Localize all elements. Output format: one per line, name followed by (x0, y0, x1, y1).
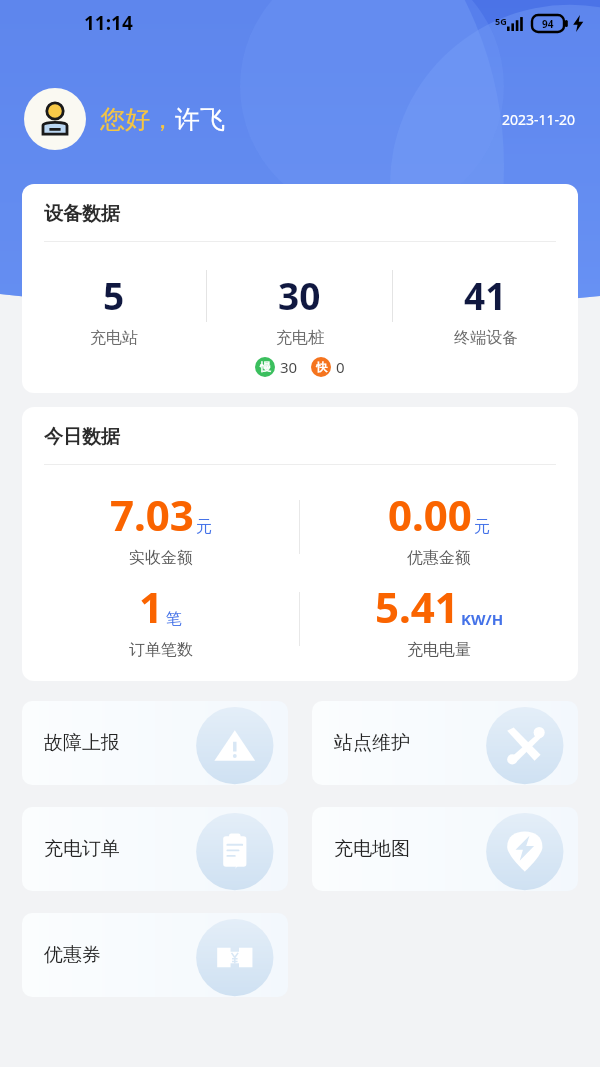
staticText: 充电订单 (44, 837, 120, 861)
staticText: 元 (196, 517, 212, 537)
staticText: 快 (316, 360, 327, 374)
staticText: 2023-11-20 (502, 110, 576, 129)
staticText: 订单笔数 (129, 640, 193, 660)
staticText: 11:14 (84, 10, 133, 36)
staticText: 94 (542, 17, 554, 31)
staticText: 41 (464, 270, 507, 320)
staticText: 慢 (260, 360, 271, 374)
staticText: 终端设备 (454, 328, 518, 348)
staticText: 站点维护 (334, 731, 410, 755)
staticText: 元 (474, 517, 490, 537)
staticText: 0 (336, 357, 345, 377)
staticText: KW/H (461, 609, 504, 629)
staticText: 0.00 (388, 486, 472, 543)
button[interactable]: 用户头像 (24, 88, 86, 150)
staticText: 笔 (166, 609, 182, 629)
staticText: 5G (495, 15, 507, 27)
staticText: 您好， (100, 104, 175, 135)
button[interactable]: 优惠券 (22, 913, 288, 997)
staticText: 7.03 (110, 486, 194, 543)
staticText: 5.41 (375, 578, 459, 635)
button[interactable]: 故障上报 (22, 701, 288, 785)
staticText: 今日数据 (44, 425, 120, 449)
staticText: 许飞 (175, 104, 225, 135)
staticText: 5 (103, 270, 125, 320)
staticText: 设备数据 (44, 202, 120, 226)
staticText: 30 (280, 357, 298, 377)
staticText: 优惠金额 (407, 548, 471, 568)
staticText: 充电地图 (334, 837, 410, 861)
staticText: 充电电量 (407, 640, 471, 660)
staticText: 30 (278, 270, 321, 320)
button[interactable]: 充电地图 (312, 807, 578, 891)
staticText: 1 (139, 578, 164, 635)
staticText: 实收金额 (129, 548, 193, 568)
staticText: 充电站 (90, 328, 138, 348)
staticText: 故障上报 (44, 731, 120, 755)
button[interactable]: 站点维护 (312, 701, 578, 785)
staticText: 充电桩 (276, 328, 324, 348)
staticText: 优惠券 (44, 943, 101, 967)
button[interactable]: 充电订单 (22, 807, 288, 891)
